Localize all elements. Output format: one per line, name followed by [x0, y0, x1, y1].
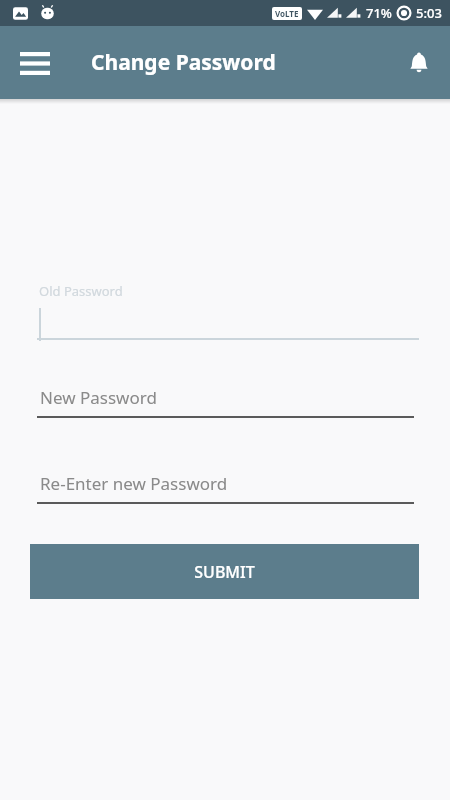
button[interactable]: Notifications	[396, 40, 442, 86]
button[interactable]: Re-Enter new Password	[0, 470, 450, 504]
button[interactable]: New Password	[0, 384, 450, 418]
staticText: Change Password	[91, 48, 276, 77]
staticText: New Password	[40, 386, 157, 409]
staticText: VoLTE	[275, 8, 299, 19]
button[interactable]: Old Password	[0, 282, 450, 340]
staticText: Old Password	[39, 282, 123, 300]
staticText: 5:03	[416, 4, 442, 22]
button[interactable]: SUBMIT	[30, 544, 419, 599]
staticText: Re-Enter new Password	[40, 472, 228, 495]
staticText: SUBMIT	[194, 561, 255, 583]
staticText: 71%	[366, 4, 392, 22]
button[interactable]: Open navigation menu	[12, 40, 58, 86]
